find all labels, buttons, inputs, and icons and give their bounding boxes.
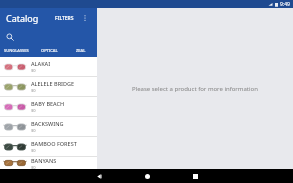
staticText: $0 (31, 88, 36, 93)
staticText: $0 (31, 68, 36, 73)
button[interactable]: ALAKAI (0, 57, 97, 76)
staticText: $0 (31, 108, 36, 113)
button[interactable]: ALELELE BRIDGE (0, 77, 97, 96)
staticText: BACKSWING (31, 120, 64, 127)
button[interactable]: SUNGLASSES (0, 45, 33, 56)
button[interactable]: More options (79, 12, 91, 24)
staticText: 9:49 (280, 1, 290, 8)
button[interactable]: ZEAL (65, 45, 97, 56)
button[interactable]: BANYANS (0, 157, 97, 169)
button[interactable]: Recent apps (181, 169, 209, 183)
button[interactable]: Home (133, 169, 161, 183)
button[interactable]: Search (0, 28, 97, 45)
button[interactable]: FILTERS (53, 14, 76, 23)
staticText: $0 (31, 165, 36, 169)
staticText: BABY BEACH (31, 100, 65, 107)
staticText: $0 (31, 148, 36, 153)
staticText: ALAKAI (31, 60, 51, 67)
button[interactable]: OPTICAL (33, 45, 65, 56)
staticText: OPTICAL (41, 48, 58, 53)
button[interactable]: BACKSWING (0, 117, 97, 136)
staticText: BANYANS (31, 157, 57, 164)
staticText: Please select a product for more informa… (132, 85, 258, 93)
staticText: Catalog (6, 12, 39, 24)
staticText: BAMBOO FOREST (31, 140, 77, 147)
staticText: FILTERS (55, 15, 74, 22)
staticText: ZEAL (76, 48, 86, 53)
staticText: $0 (31, 128, 36, 133)
staticText: ALELELE BRIDGE (31, 80, 75, 87)
button[interactable]: BAMBOO FOREST (0, 137, 97, 156)
button[interactable]: BABY BEACH (0, 97, 97, 116)
button[interactable]: Back (85, 169, 113, 183)
staticText: SUNGLASSES (4, 48, 29, 53)
